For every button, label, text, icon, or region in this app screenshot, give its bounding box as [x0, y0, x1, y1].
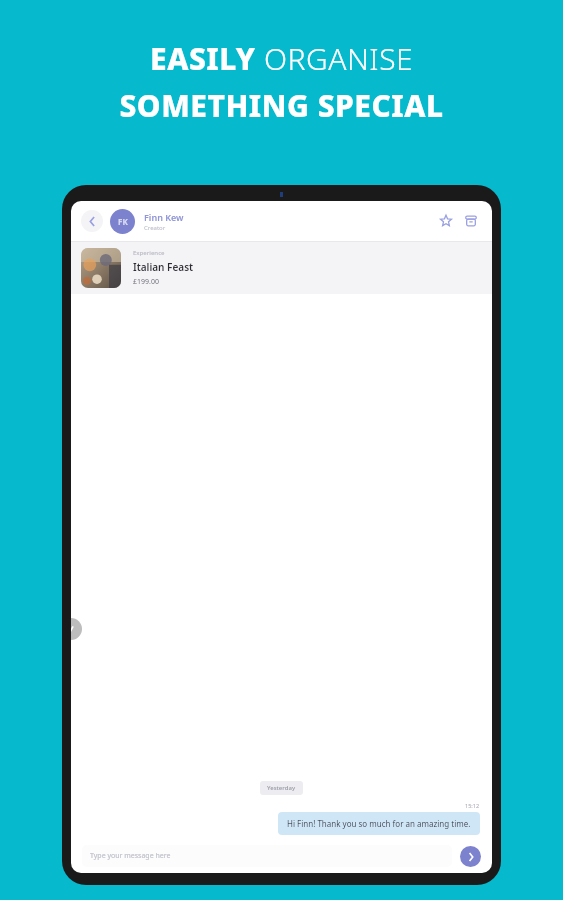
button[interactable]: Finn Kew: [144, 211, 435, 232]
button[interactable]: Send: [460, 846, 481, 867]
staticText: Creator: [144, 224, 166, 232]
button[interactable]: Favourite: [435, 210, 457, 232]
button[interactable]: FK: [110, 209, 135, 234]
staticText: Italian Feast: [133, 260, 194, 274]
button[interactable]: Archive: [460, 210, 482, 232]
button[interactable]: Hi Finn! Thank you so much for an amazin…: [278, 812, 480, 835]
button[interactable]: Previous: [71, 618, 82, 640]
staticText: Finn Kew: [144, 211, 184, 223]
staticText: Experience: [133, 249, 165, 257]
staticText: 15:12: [465, 802, 480, 809]
staticText: Type your message here: [90, 851, 171, 861]
button[interactable]: Back: [81, 210, 103, 232]
staticText: Yesterday: [267, 784, 296, 792]
staticText: Hi Finn! Thank you so much for an amazin…: [287, 818, 471, 829]
button[interactable]: Experience: [81, 242, 482, 294]
staticText: £199.00: [133, 277, 159, 287]
staticText: ORGANISE: [264, 38, 414, 79]
staticText: FK: [118, 216, 128, 227]
staticText: EASILY: [150, 38, 264, 79]
staticText: SOMETHING SPECIAL: [119, 85, 444, 126]
button[interactable]: Type your message here: [82, 845, 452, 867]
